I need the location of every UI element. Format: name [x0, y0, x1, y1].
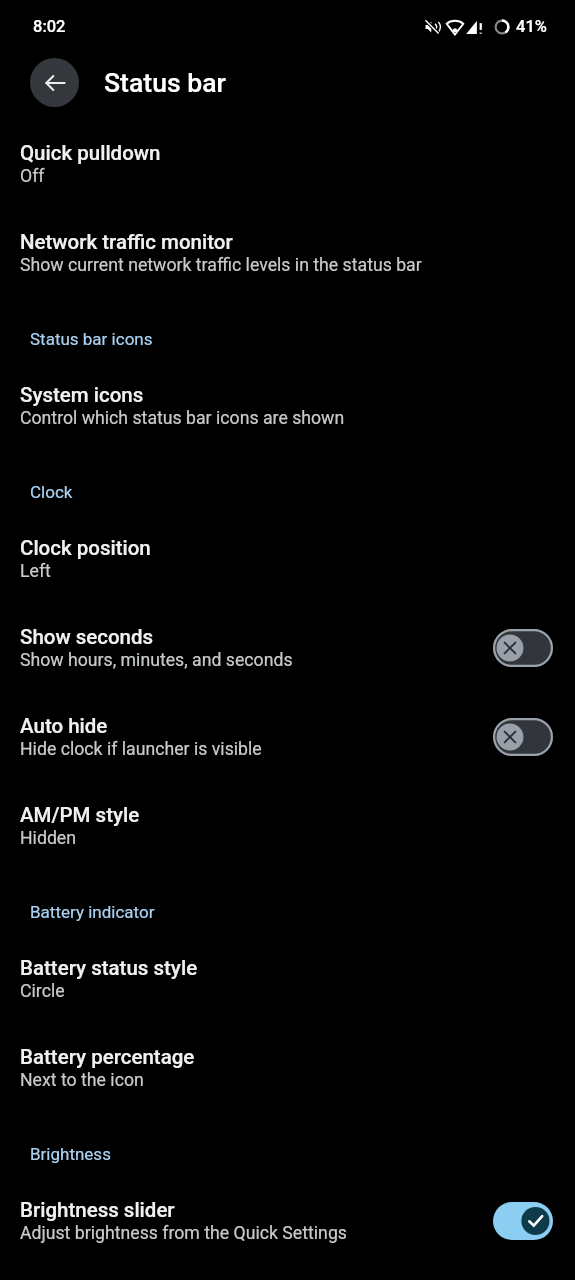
button[interactable]: System icons [0, 361, 575, 450]
staticText: Circle [20, 981, 65, 1002]
staticText: Clock [30, 482, 73, 502]
button[interactable]: Toggle on [493, 1202, 553, 1240]
staticText: Auto hide [20, 714, 108, 738]
button[interactable]: AM/PM style [0, 781, 575, 870]
staticText: System icons [20, 383, 144, 407]
staticText: Status bar icons [30, 329, 153, 349]
staticText: Network traffic monitor [20, 230, 233, 254]
button[interactable]: Battery status style [0, 934, 575, 1023]
staticText: Hidden [20, 828, 77, 849]
button[interactable]: Network traffic monitor [0, 208, 575, 297]
button[interactable]: Back [30, 58, 79, 107]
staticText: Next to the icon [20, 1070, 144, 1091]
staticText: Brightness [30, 1144, 111, 1164]
staticText: Adjust brightness from the Quick Setting… [20, 1223, 347, 1244]
staticText: Clock position [20, 536, 151, 560]
staticText: Battery indicator [30, 902, 155, 922]
button[interactable]: Show seconds [0, 603, 575, 692]
staticText: Off [20, 166, 45, 187]
staticText: Brightness slider [20, 1198, 175, 1222]
staticText: Quick pulldown [20, 141, 161, 165]
staticText: Battery percentage [20, 1045, 195, 1069]
staticText: 8:02 [33, 17, 66, 36]
staticText: Left [20, 561, 51, 582]
staticText: Battery status style [20, 956, 198, 980]
staticText: AM/PM style [20, 803, 140, 827]
staticText: Show seconds [20, 625, 154, 649]
staticText: Hide clock if launcher is visible [20, 739, 262, 760]
button[interactable]: Quick pulldown [0, 119, 575, 208]
staticText: Status bar [104, 67, 226, 98]
staticText: 41% [516, 17, 547, 36]
button[interactable]: Toggle off [493, 718, 553, 756]
button[interactable]: Brightness slider [0, 1176, 575, 1265]
staticText: Show current network traffic levels in t… [20, 255, 422, 276]
button[interactable]: Auto hide [0, 692, 575, 781]
staticText: Control which status bar icons are shown [20, 408, 345, 429]
staticText: Show hours, minutes, and seconds [20, 650, 293, 671]
button[interactable]: Toggle off [493, 629, 553, 667]
button[interactable]: Clock position [0, 514, 575, 603]
button[interactable]: Battery percentage [0, 1023, 575, 1112]
